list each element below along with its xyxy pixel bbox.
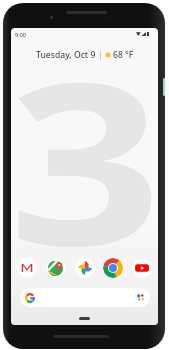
button[interactable]: Tuesday, Oct 9: [35, 49, 135, 61]
staticText: 68 °F: [113, 49, 134, 61]
button[interactable]: Gmail: [17, 258, 37, 278]
button[interactable]: Maps: [46, 258, 66, 278]
button[interactable]: Photos: [75, 258, 95, 278]
button[interactable]: Chrome: [103, 258, 123, 278]
staticText: 3: [11, 28, 158, 303]
button[interactable]: Home: [79, 317, 90, 320]
button[interactable]: Search: [20, 288, 150, 307]
staticText: 9:00: [15, 31, 26, 38]
staticText: |: [98, 49, 103, 61]
button[interactable]: YouTube: [132, 258, 152, 278]
staticText: Tuesday, Oct 9: [36, 49, 96, 61]
